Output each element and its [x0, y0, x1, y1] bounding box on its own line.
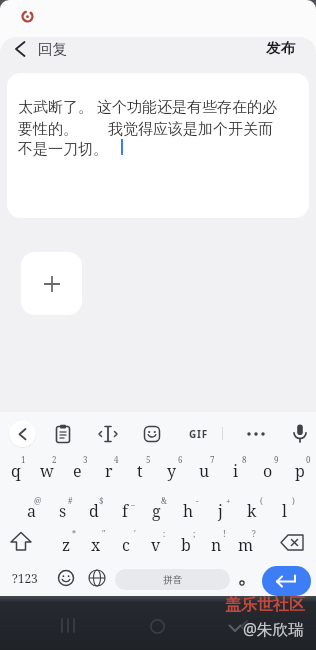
button[interactable]: l: [268, 493, 300, 528]
staticText: d: [89, 500, 99, 522]
staticText: ): [292, 495, 295, 506]
button[interactable]: o: [252, 452, 284, 489]
staticText: b: [181, 534, 191, 556]
staticText: &: [161, 495, 167, 506]
staticText: 3: [83, 454, 88, 465]
staticText: *: [72, 528, 76, 539]
staticText: 发布: [266, 39, 295, 57]
staticText: ;: [193, 528, 196, 539]
staticText: v: [151, 534, 161, 556]
button[interactable]: [86, 567, 108, 589]
staticText: 不是一刀切。: [18, 140, 108, 159]
staticText: :: [163, 528, 166, 539]
staticText: t: [137, 460, 143, 482]
button[interactable]: [9, 420, 37, 448]
staticText: u: [199, 460, 210, 482]
staticText: ?123: [12, 570, 38, 586]
button[interactable]: [7, 73, 309, 218]
staticText: f: [122, 500, 128, 522]
button[interactable]: [97, 423, 119, 445]
button[interactable]: a: [16, 493, 47, 528]
button[interactable]: [52, 423, 74, 445]
staticText: ?: [252, 528, 256, 539]
staticText: 4: [114, 454, 119, 465]
staticText: e: [73, 460, 82, 482]
staticText: 回复: [38, 40, 67, 58]
staticText: @朱欣瑞: [243, 618, 304, 639]
staticText: s: [59, 500, 67, 522]
button[interactable]: ?123: [4, 560, 46, 596]
staticText: n: [211, 534, 222, 556]
staticText: $: [99, 495, 104, 506]
button[interactable]: [21, 252, 82, 315]
staticText: h: [183, 500, 194, 522]
staticText: o: [263, 460, 273, 482]
button[interactable]: k: [236, 493, 268, 528]
button[interactable]: p: [284, 452, 316, 489]
button[interactable]: 发布: [258, 36, 302, 60]
staticText: -: [196, 495, 199, 506]
button[interactable]: u: [188, 452, 220, 489]
button[interactable]: s: [47, 493, 78, 528]
button[interactable]: j: [204, 493, 236, 528]
staticText: 1: [21, 454, 26, 465]
staticText: #: [68, 495, 73, 506]
staticText: g: [152, 500, 161, 522]
button[interactable]: r: [93, 452, 124, 489]
staticText: i: [233, 460, 239, 482]
staticText: y: [167, 460, 177, 482]
button[interactable]: t: [124, 452, 156, 489]
button[interactable]: d: [78, 493, 109, 528]
button[interactable]: y: [156, 452, 188, 489]
staticText: l: [282, 500, 287, 522]
staticText: q: [11, 460, 21, 482]
button[interactable]: e: [62, 452, 93, 489]
staticText: _: [131, 495, 135, 506]
button[interactable]: c: [111, 526, 141, 563]
button[interactable]: 拼音: [115, 569, 230, 590]
staticText: 8: [242, 454, 247, 465]
button[interactable]: x: [81, 526, 111, 563]
button[interactable]: [234, 567, 252, 589]
staticText: 0: [306, 454, 311, 465]
staticText: 5: [146, 454, 151, 465]
staticText: ": [102, 528, 106, 539]
button[interactable]: [55, 567, 77, 589]
button[interactable]: w: [31, 452, 62, 489]
button[interactable]: g: [140, 493, 172, 528]
button[interactable]: z: [51, 526, 81, 563]
button[interactable]: b: [171, 526, 201, 563]
button[interactable]: [289, 422, 311, 446]
staticText: @: [34, 495, 42, 506]
button[interactable]: m: [231, 526, 261, 563]
staticText: 9: [274, 454, 279, 465]
staticText: z: [62, 534, 71, 556]
button[interactable]: [141, 423, 163, 445]
button[interactable]: i: [220, 452, 252, 489]
button[interactable]: h: [172, 493, 204, 528]
staticText: c: [122, 534, 130, 556]
button[interactable]: [245, 423, 267, 445]
staticText: 2: [52, 454, 57, 465]
button[interactable]: [6, 530, 36, 554]
staticText: w: [40, 460, 54, 482]
button[interactable]: q: [0, 452, 31, 489]
staticText: GIF: [189, 427, 209, 441]
staticText: m: [238, 534, 254, 556]
staticText: +: [226, 495, 231, 506]
button[interactable]: [8, 38, 34, 60]
button[interactable]: n: [201, 526, 231, 563]
button[interactable]: v: [141, 526, 171, 563]
button[interactable]: [262, 566, 311, 596]
button[interactable]: [278, 532, 308, 554]
staticText: r: [105, 460, 113, 482]
button[interactable]: GIF: [183, 423, 215, 445]
staticText: 6: [178, 454, 183, 465]
staticText: !: [223, 528, 226, 539]
staticText: 拼音: [163, 574, 182, 586]
button[interactable]: f: [109, 493, 140, 528]
staticText: p: [295, 460, 305, 482]
staticText: x: [91, 534, 101, 556]
staticText: (: [260, 495, 263, 506]
staticText: ': [134, 528, 136, 539]
